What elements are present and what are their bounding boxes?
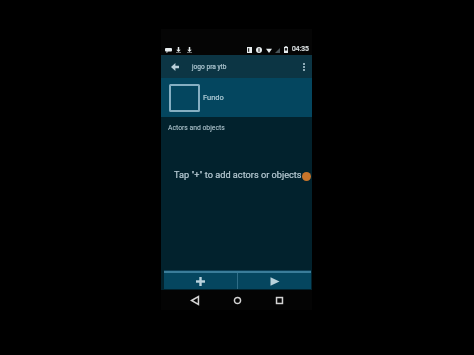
button[interactable]: More options <box>296 55 312 78</box>
button[interactable]: Back <box>166 55 184 78</box>
staticText: Tap "+" to add actors or objects <box>174 169 302 180</box>
button[interactable]: Recents <box>258 290 300 310</box>
button[interactable]: Home <box>216 290 258 310</box>
staticText: 04:35 <box>292 45 309 53</box>
button[interactable]: Play <box>238 273 311 289</box>
button[interactable]: Fundo <box>161 78 312 117</box>
staticText: Fundo <box>203 93 224 102</box>
button[interactable]: Back <box>174 290 216 310</box>
staticText: Actors and objects <box>168 124 225 132</box>
staticText: jogo pra ytb <box>192 63 227 71</box>
button[interactable]: Add <box>164 273 237 289</box>
